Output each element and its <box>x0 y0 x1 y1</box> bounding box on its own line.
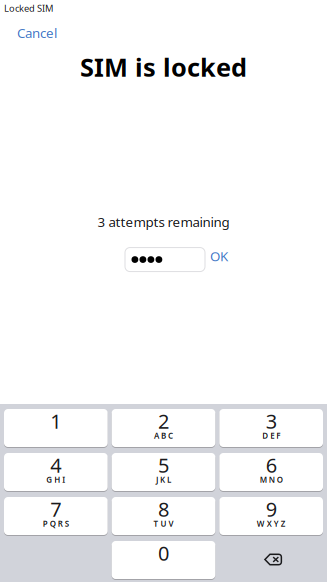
staticText: SIM is locked <box>80 50 247 84</box>
staticText: 0 <box>158 540 169 566</box>
staticText: Cancel <box>17 24 57 42</box>
staticText: Locked SIM <box>4 2 53 14</box>
staticText: T U V <box>153 518 173 529</box>
button[interactable]: 1 <box>4 409 108 447</box>
staticText: M N O <box>260 474 283 485</box>
staticText: 9 <box>266 496 277 522</box>
staticText: 7 <box>50 496 61 522</box>
button[interactable]: 3 <box>219 409 323 447</box>
staticText: J K L <box>156 474 171 485</box>
button[interactable]: Delete <box>219 541 323 579</box>
button[interactable]: 6 <box>219 453 323 491</box>
staticText: 2 <box>158 408 169 434</box>
staticText: P Q R S <box>43 518 69 529</box>
staticText: G H I <box>46 474 65 485</box>
staticText: 8 <box>158 496 169 522</box>
button[interactable]: 8 <box>112 497 215 535</box>
button[interactable]: 2 <box>112 409 215 447</box>
button[interactable]: 9 <box>219 497 323 535</box>
button[interactable]: 5 <box>112 453 215 491</box>
button[interactable]: OK <box>205 246 234 273</box>
staticText: D E F <box>262 430 280 441</box>
staticText: 4 <box>50 452 61 478</box>
button[interactable]: 0 <box>112 541 215 579</box>
staticText: 1 <box>50 408 61 434</box>
button[interactable]: 7 <box>4 497 108 535</box>
staticText: OK <box>210 247 228 265</box>
staticText: 3 <box>266 408 277 434</box>
staticText: 3 attempts remaining <box>97 213 229 231</box>
staticText: 6 <box>266 452 277 478</box>
button[interactable]: Cancel <box>11 20 63 46</box>
staticText: 5 <box>158 452 169 478</box>
button[interactable]: 4 <box>4 453 108 491</box>
staticText: A B C <box>154 430 173 441</box>
staticText: W X Y Z <box>257 518 286 529</box>
